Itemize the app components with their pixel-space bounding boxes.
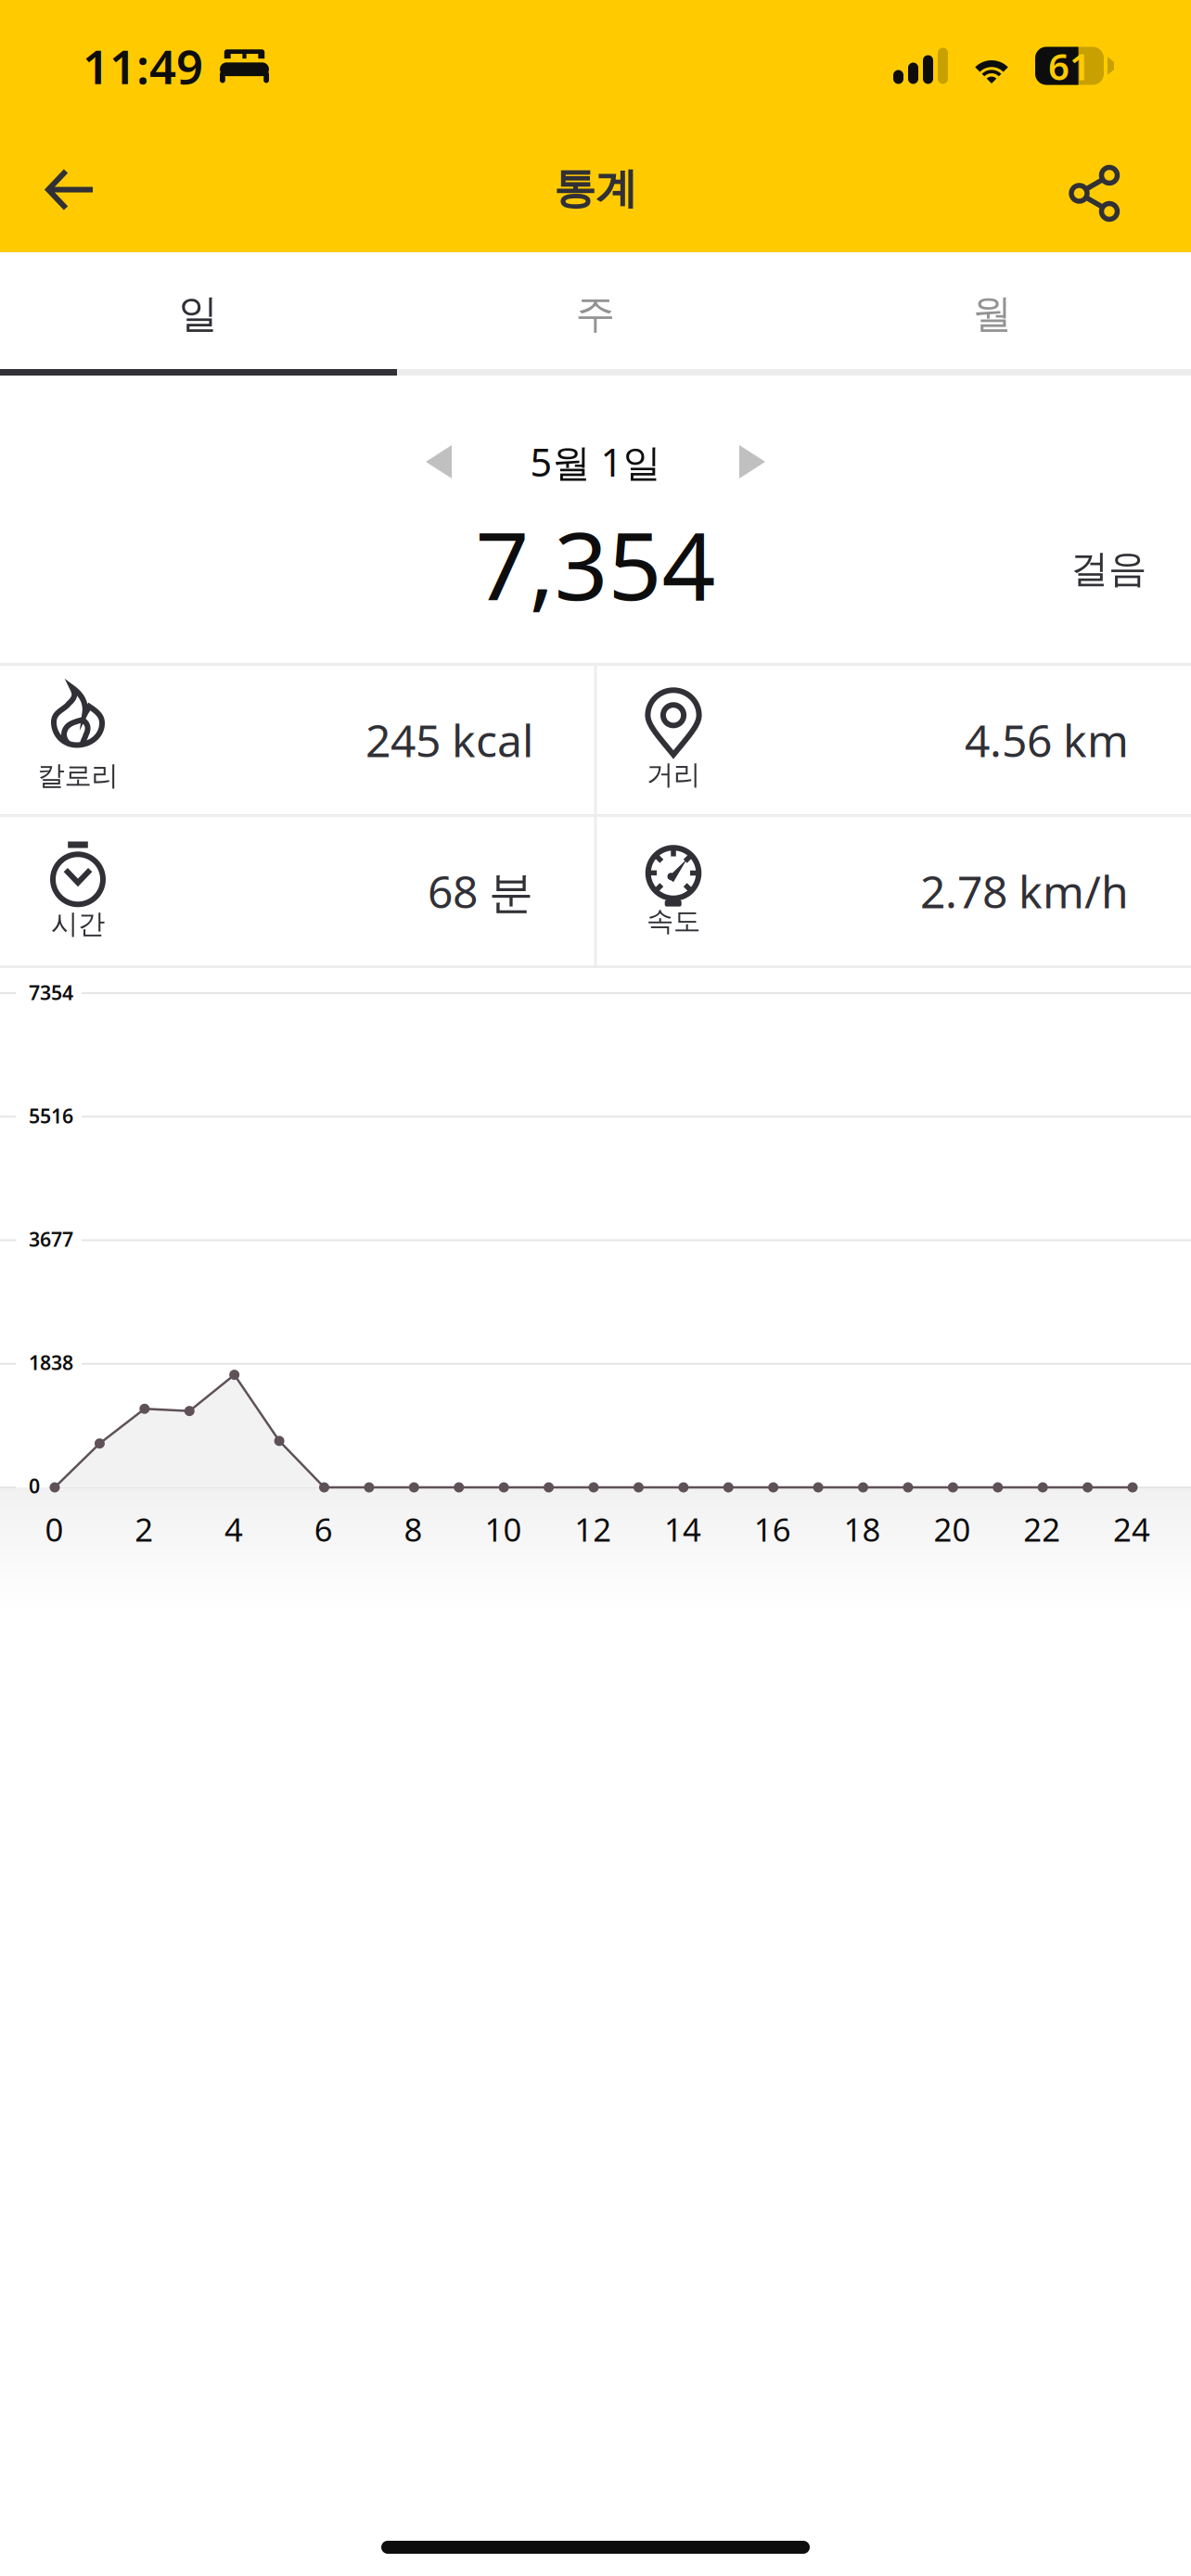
staticText: 칼로리 <box>38 759 118 792</box>
staticText: 24 <box>1113 1508 1150 1550</box>
staticText: 20 <box>934 1508 971 1550</box>
staticText: 245 kcal <box>365 710 533 769</box>
staticText: 12 <box>574 1508 611 1550</box>
staticText: 7,354 <box>475 501 716 626</box>
button[interactable]: Back <box>45 135 173 246</box>
staticText: 4.56 km <box>965 710 1129 769</box>
staticText: 3677 <box>29 1226 73 1252</box>
staticText: 14 <box>664 1508 701 1550</box>
staticText: 68 분 <box>428 862 533 921</box>
staticText: 22 <box>1023 1508 1060 1550</box>
staticText: 4 <box>224 1508 243 1550</box>
staticText: 속도 <box>647 905 700 938</box>
staticText: 18 <box>844 1508 881 1550</box>
staticText: 0 <box>29 1473 40 1499</box>
button[interactable]: 월 <box>794 252 1191 376</box>
staticText: 61 <box>1048 41 1091 90</box>
staticText: 2.78 km/h <box>920 862 1129 921</box>
staticText: 일 <box>179 290 218 338</box>
staticText: 2 <box>135 1508 153 1550</box>
staticText: 월 <box>973 290 1012 338</box>
staticText: 0 <box>45 1508 63 1550</box>
staticText: 10 <box>485 1508 522 1550</box>
staticText: 16 <box>754 1508 791 1550</box>
staticText: 주 <box>576 290 615 338</box>
button[interactable]: Previous day <box>426 433 517 491</box>
staticText: 1838 <box>29 1349 73 1375</box>
staticText: 거리 <box>647 758 700 791</box>
button[interactable]: 주 <box>397 252 794 376</box>
staticText: 5월 1일 <box>530 436 661 487</box>
button[interactable]: 일 <box>0 252 397 376</box>
button[interactable]: Next day <box>674 433 765 491</box>
staticText: 시간 <box>51 907 105 941</box>
staticText: 걸음 <box>1070 545 1146 592</box>
staticText: 6 <box>314 1508 333 1550</box>
button[interactable]: Share <box>998 135 1119 246</box>
staticText: 11:49 <box>83 35 203 97</box>
staticText: 8 <box>404 1508 423 1550</box>
staticText: 통계 <box>554 163 637 214</box>
staticText: 7354 <box>29 979 73 1005</box>
staticText: 5516 <box>29 1103 73 1129</box>
